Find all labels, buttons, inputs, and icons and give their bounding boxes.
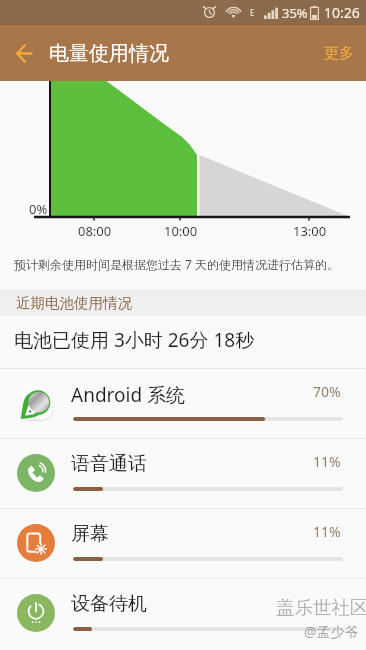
staticText: 设备待机: [71, 592, 147, 616]
staticText: 电量使用情况: [49, 41, 169, 66]
button[interactable]: 语音通话: [0, 438, 366, 508]
staticText: 近期电池使用情况: [16, 294, 132, 312]
staticText: 10:26: [324, 3, 360, 22]
button[interactable]: 屏幕: [0, 508, 366, 578]
staticText: 0%: [29, 200, 48, 218]
button[interactable]: Back: [0, 25, 49, 81]
staticText: @孟少爷: [304, 622, 359, 641]
staticText: 08:00: [78, 222, 112, 240]
staticText: 盖乐世社区: [276, 596, 366, 619]
staticText: Android 系统: [71, 382, 186, 408]
staticText: 35%: [282, 4, 308, 22]
staticText: E: [250, 7, 255, 18]
staticText: 70%: [313, 382, 341, 401]
staticText: 13:00: [293, 222, 327, 240]
button[interactable]: 设备待机: [0, 578, 366, 648]
staticText: 10:00: [164, 222, 198, 240]
staticText: 更多: [324, 44, 354, 63]
button[interactable]: 更多: [309, 25, 366, 81]
staticText: 11%: [313, 452, 341, 471]
staticText: 电池已使用 3小时 26分 18秒: [14, 327, 255, 353]
staticText: 11%: [313, 522, 341, 541]
staticText: 预计剩余使用时间是根据您过去 7 天的使用情况进行估算的。: [14, 256, 340, 272]
staticText: 屏幕: [71, 522, 109, 546]
button[interactable]: Android 系统: [0, 368, 366, 438]
staticText: 语音通话: [71, 452, 147, 476]
